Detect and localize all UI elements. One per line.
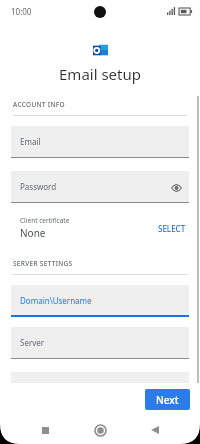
- button[interactable]: Email: [11, 126, 189, 160]
- staticText: Email setup: [0, 64, 200, 84]
- button[interactable]: Show password: [168, 180, 184, 196]
- button[interactable]: Next: [145, 389, 190, 410]
- staticText: Domain\Username: [20, 295, 92, 306]
- staticText: 10:00: [11, 6, 32, 17]
- button[interactable]: Domain\Username: [11, 285, 189, 319]
- staticText: Password: [20, 181, 57, 192]
- button[interactable]: Port: [11, 372, 189, 406]
- button[interactable]: Client certificate: [0, 212, 200, 244]
- staticText: SERVER SETTINGS: [13, 259, 73, 268]
- button[interactable]: SELECT: [158, 223, 186, 234]
- button[interactable]: Password: [11, 171, 189, 205]
- staticText: Next: [156, 393, 179, 407]
- button[interactable]: Server: [11, 327, 189, 361]
- staticText: None: [20, 226, 46, 240]
- button[interactable]: Recents: [34, 419, 56, 441]
- staticText: Client certificate: [20, 216, 70, 225]
- staticText: Server: [20, 337, 45, 348]
- staticText: ACCOUNT INFO: [13, 100, 65, 109]
- staticText: Port: [20, 382, 36, 393]
- staticText: Email: [20, 136, 41, 147]
- staticText: SELECT: [158, 223, 186, 234]
- button[interactable]: Back: [144, 419, 166, 441]
- button[interactable]: Home: [89, 419, 111, 441]
